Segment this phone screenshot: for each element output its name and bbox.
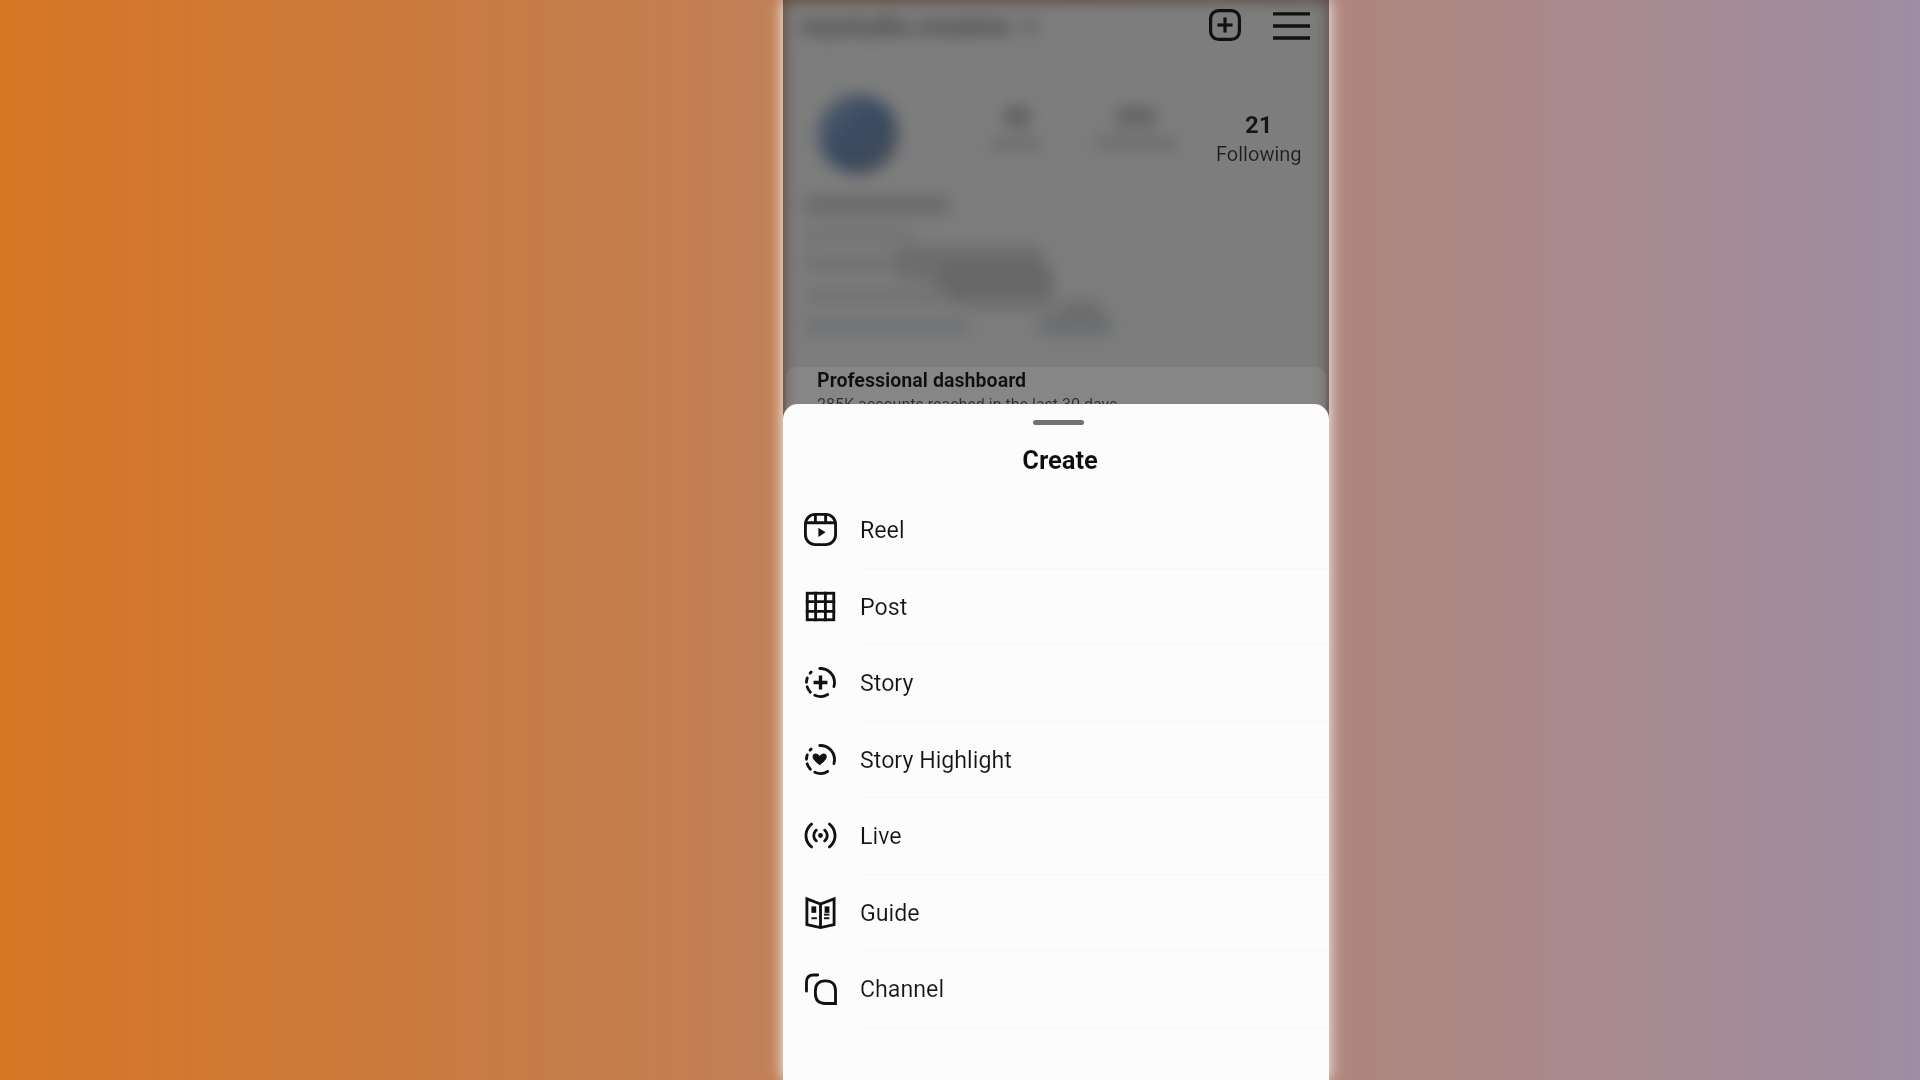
button[interactable]: Channel: [783, 950, 1329, 1027]
staticText: Post: [860, 593, 908, 620]
staticText: Reel: [860, 516, 905, 543]
staticText: Story: [860, 669, 914, 696]
staticText: Live: [860, 822, 902, 849]
button[interactable]: Story Highlight: [783, 721, 1329, 798]
staticText: Professional dashboard: [817, 369, 1027, 392]
button[interactable]: Post: [783, 568, 1329, 645]
staticText: Following: [1216, 142, 1302, 165]
button[interactable]: Professional dashboard: [786, 367, 1326, 417]
staticText: 21: [1245, 111, 1273, 139]
staticText: 352: [1116, 104, 1156, 131]
staticText: mystudio.creative ▾: [801, 11, 1037, 41]
staticText: Story Highlight: [860, 746, 1012, 773]
button[interactable]: Story: [783, 644, 1329, 721]
button[interactable]: Reel: [783, 491, 1329, 568]
staticText: Create: [1022, 445, 1098, 475]
staticText: 48: [1003, 104, 1030, 131]
staticText: Guide: [860, 899, 920, 926]
button[interactable]: Menu: [1269, 2, 1313, 46]
staticText: Channel: [860, 975, 945, 1002]
button[interactable]: Live: [783, 797, 1329, 874]
button[interactable]: New post: [1204, 4, 1246, 46]
button[interactable]: Guide: [783, 874, 1329, 951]
staticText: 285K accounts reached in the last 30 day…: [817, 395, 1118, 414]
